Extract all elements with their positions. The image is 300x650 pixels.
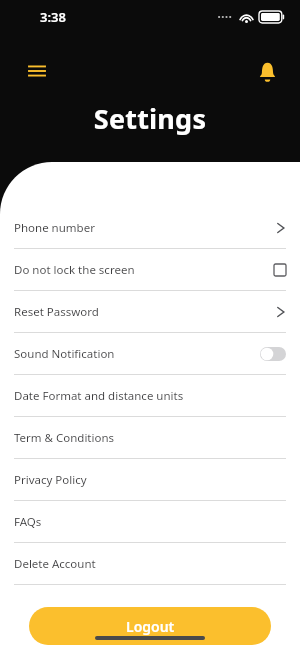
- staticText: Privacy Policy: [14, 472, 286, 488]
- staticText: Phone number: [14, 220, 276, 236]
- staticText: Date Format and distance units: [14, 388, 286, 404]
- staticText: FAQs: [14, 514, 286, 530]
- button[interactable]: Open menu: [22, 56, 52, 86]
- staticText: Delete Account: [14, 556, 286, 572]
- staticText: Reset Password: [14, 304, 276, 320]
- button[interactable]: Logout: [29, 607, 271, 645]
- staticText: Logout: [126, 617, 175, 636]
- button[interactable]: Privacy Policy: [0, 459, 300, 500]
- button[interactable]: FAQs: [0, 501, 300, 542]
- button[interactable]: Term & Conditions: [0, 417, 300, 458]
- staticText: Settings: [0, 100, 300, 137]
- button[interactable]: Delete Account: [0, 543, 300, 584]
- staticText: Sound Notification: [14, 346, 260, 362]
- staticText: Term & Conditions: [14, 430, 286, 446]
- staticText: Do not lock the screen: [14, 262, 274, 278]
- button[interactable]: Reset Password: [0, 291, 300, 332]
- button[interactable]: Phone number: [0, 207, 300, 248]
- staticText: 3:38: [40, 8, 66, 26]
- button[interactable]: Notifications: [252, 56, 282, 86]
- button[interactable]: Do not lock the screen: [0, 249, 300, 290]
- button[interactable]: Date Format and distance units: [0, 375, 300, 416]
- button[interactable]: Sound Notification: [0, 333, 300, 374]
